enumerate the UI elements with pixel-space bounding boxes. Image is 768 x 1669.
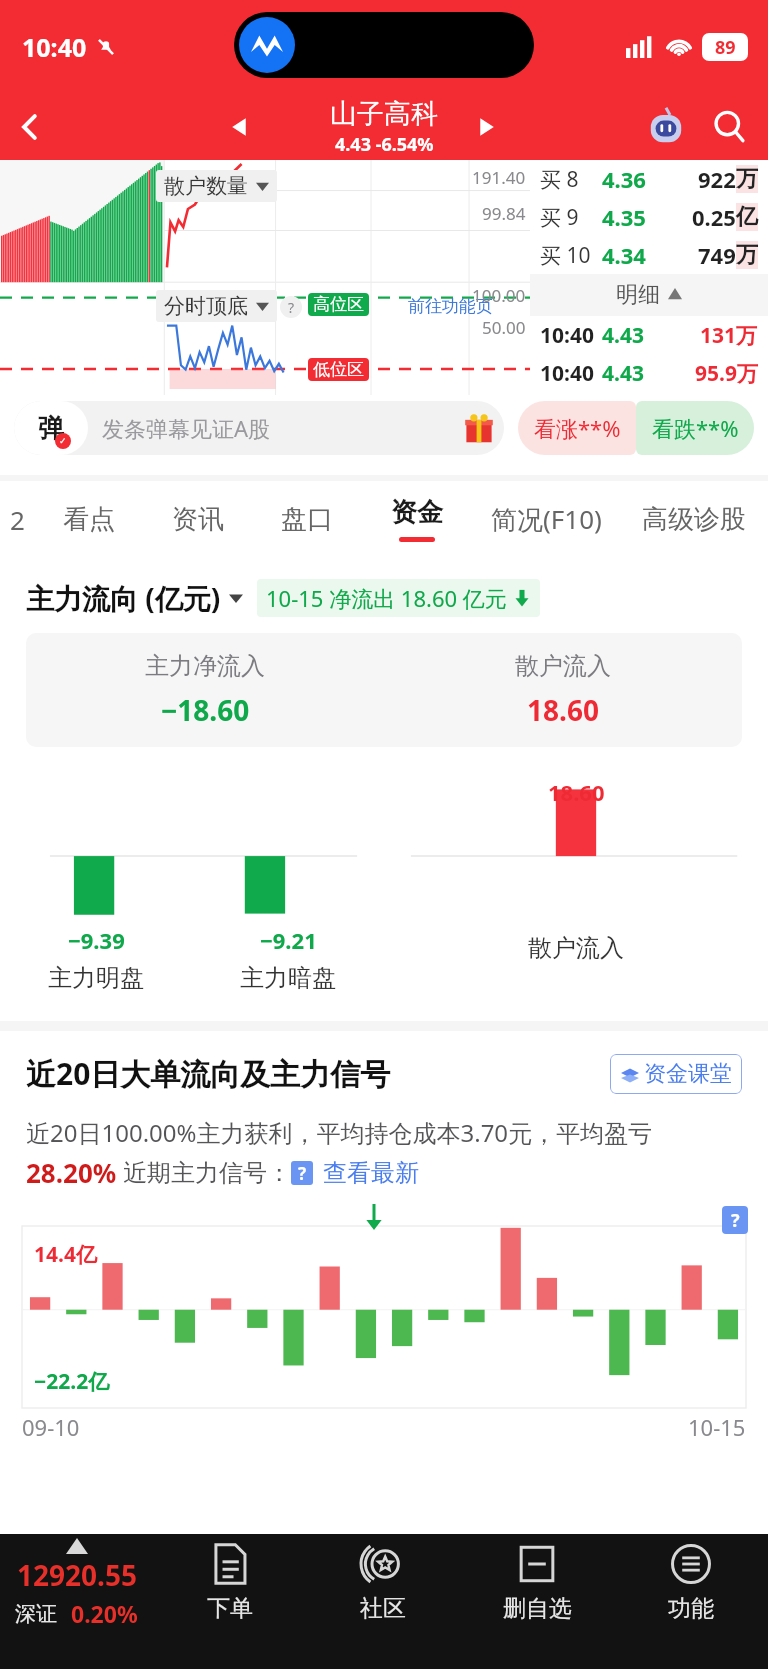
button[interactable]: 主力净流入 — [26, 633, 742, 747]
button[interactable]: 明细 — [530, 274, 768, 316]
staticText: −22.2亿 — [34, 1367, 110, 1396]
button[interactable]: 社区 — [306, 1534, 460, 1634]
staticText: 弹 — [38, 412, 64, 445]
staticText: 近20日100.00%主力获利，平均持仓成本3.70元，平均盈亏 — [26, 1116, 653, 1149]
staticText: 散户数量 — [164, 173, 248, 199]
button[interactable]: 看跌**% — [636, 401, 754, 455]
staticText: 盘口 — [281, 503, 333, 536]
button[interactable]: 查看最新 — [323, 1158, 419, 1188]
staticText: ? — [731, 1208, 740, 1233]
staticText: 低位区 — [313, 359, 364, 380]
staticText: 14.4亿 — [34, 1240, 97, 1269]
staticText: 10-15 — [688, 1412, 746, 1442]
staticText: 看点 — [63, 503, 115, 536]
staticText: 10-15 净流出 18.60 亿元 — [266, 583, 507, 613]
button[interactable]: 12920.55 — [0, 1534, 153, 1634]
staticText: 0.20% — [71, 1598, 138, 1629]
button[interactable]: 买 8 — [540, 160, 758, 198]
staticText: 明细 — [616, 281, 660, 309]
staticText: 09-10 — [22, 1412, 80, 1442]
staticText: 12920.55 — [17, 1556, 137, 1594]
staticText: 2 — [10, 502, 25, 537]
button[interactable]: 分时顶底 — [156, 290, 277, 322]
staticText: 10:40 — [22, 30, 87, 64]
staticText: ? — [288, 298, 295, 317]
staticText: 看跌**% — [652, 413, 739, 443]
staticText: 4.43 -6.54% — [335, 132, 434, 157]
staticText: 4.34 — [602, 240, 662, 270]
button[interactable]: 弹 — [14, 401, 504, 455]
staticText: 主力流向 (亿元) — [26, 579, 221, 617]
button[interactable]: Help — [280, 296, 302, 318]
button[interactable]: 10:40 — [540, 354, 758, 392]
button[interactable]: AI assistant — [638, 99, 694, 155]
staticText: 前往功能页 — [408, 296, 493, 317]
button[interactable]: 资金课堂 — [610, 1054, 742, 1094]
staticText: 10:40 — [540, 321, 594, 350]
button[interactable]: 10-15 净流出 18.60 亿元 — [257, 579, 540, 617]
staticText: 散户流入 — [515, 651, 611, 681]
staticText: 18.60 — [548, 777, 605, 807]
staticText: −9.39 — [68, 925, 125, 955]
button[interactable]: 删自选 — [460, 1534, 614, 1634]
staticText: 0.25 — [692, 202, 736, 232]
button[interactable]: 功能 — [614, 1534, 768, 1634]
button[interactable]: Chart help — [722, 1206, 748, 1234]
staticText: 4.36 — [602, 164, 662, 194]
button[interactable]: 10:40 — [540, 316, 758, 354]
staticText: 散户流入 — [528, 933, 624, 963]
staticText: 主力净流入 — [145, 651, 265, 681]
staticText: 10:40 — [540, 359, 594, 388]
staticText: 89 — [715, 35, 736, 60]
button[interactable]: Next stock — [458, 99, 514, 155]
staticText: 亿 — [736, 203, 758, 231]
staticText: 分时顶底 — [164, 293, 248, 319]
button[interactable]: 下单 — [153, 1534, 306, 1634]
staticText: 4.35 — [602, 202, 662, 232]
button[interactable]: Back — [0, 97, 60, 157]
staticText: 山子高科 — [330, 97, 438, 131]
staticText: 下单 — [207, 1594, 253, 1623]
button[interactable]: 2 — [0, 481, 34, 557]
staticText: 99.84 — [482, 202, 526, 225]
button[interactable]: 买 9 — [540, 198, 758, 236]
staticText: 近期主力信号： — [123, 1158, 291, 1188]
button[interactable]: 买 10 — [540, 236, 758, 274]
button[interactable]: Help — [291, 1161, 313, 1185]
staticText: 发条弹幕见证A股 — [102, 413, 271, 443]
button[interactable]: 散户数量 — [156, 170, 277, 202]
button[interactable]: 看点 — [34, 481, 143, 557]
staticText: 资金课堂 — [644, 1060, 732, 1088]
button[interactable]: 资讯 — [143, 481, 252, 557]
button[interactable]: 盘口 — [252, 481, 362, 557]
staticText: 买 9 — [540, 203, 602, 232]
staticText: ✓ — [59, 436, 67, 446]
staticText: 922 — [698, 164, 736, 194]
staticText: 高位区 — [313, 294, 364, 315]
button[interactable]: 看涨**% — [518, 401, 636, 455]
button[interactable]: 高级诊股 — [620, 481, 768, 557]
staticText: ? — [298, 1162, 307, 1185]
staticText: 社区 — [360, 1594, 406, 1623]
staticText: 买 10 — [540, 241, 602, 270]
staticText: 18.60 — [527, 691, 599, 729]
staticText: 191.40 — [472, 166, 526, 189]
staticText: 近20日大单流向及主力信号 — [26, 1053, 391, 1094]
staticText: 深证 — [15, 1601, 57, 1627]
staticText: 资金 — [391, 496, 443, 529]
button[interactable]: 资金 — [362, 481, 472, 557]
button[interactable]: 主力流向 (亿元) — [26, 579, 243, 617]
button[interactable]: Previous stock — [212, 99, 268, 155]
staticText: 简况(F10) — [491, 501, 602, 537]
button[interactable]: 简况(F10) — [472, 481, 620, 557]
staticText: 看涨**% — [534, 413, 621, 443]
staticText: 资讯 — [172, 503, 224, 536]
button[interactable]: Search — [700, 97, 760, 157]
staticText: 50.00 — [482, 316, 526, 339]
staticText: 28.20% — [26, 1155, 117, 1190]
staticText: 4.43 — [602, 359, 644, 388]
